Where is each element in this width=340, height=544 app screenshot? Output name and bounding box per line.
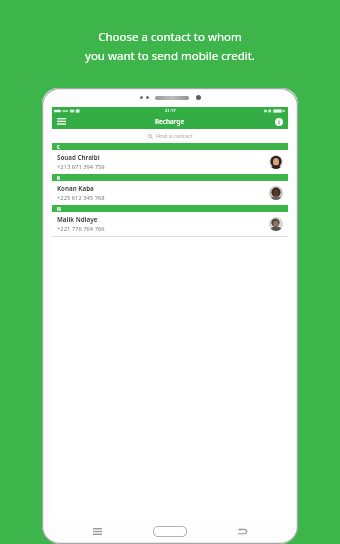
staticText: Recharge — [155, 117, 185, 126]
button[interactable]: Information — [275, 118, 283, 126]
staticText: Choose a contact to whom — [98, 29, 242, 45]
button[interactable]: Back — [237, 528, 247, 536]
staticText: +225 612 345 768 — [57, 194, 105, 202]
staticText: Konan Kaba — [57, 184, 94, 192]
button[interactable]: Konan Kaba — [52, 181, 288, 205]
button[interactable]: Home — [153, 526, 187, 537]
button[interactable]: Recent apps — [93, 528, 102, 535]
staticText: +213 671 394 759 — [57, 163, 105, 171]
staticText: Find a contact — [156, 132, 193, 140]
button[interactable]: Malik Ndiaye — [52, 212, 288, 236]
staticText: N — [57, 206, 61, 212]
button[interactable]: Find a contact — [52, 129, 288, 143]
staticText: Malik Ndiaye — [57, 215, 98, 223]
staticText: Souad Chraibi — [57, 153, 100, 161]
button[interactable]: Souad Chraibi — [52, 150, 288, 174]
staticText: +221 776 764 766 — [57, 225, 105, 233]
staticText: K — [57, 175, 61, 181]
staticText: 21:17 — [165, 108, 176, 114]
staticText: you want to send mobile credit. — [85, 48, 255, 64]
button[interactable]: Open navigation menu — [57, 118, 66, 125]
staticText: C — [57, 144, 60, 150]
